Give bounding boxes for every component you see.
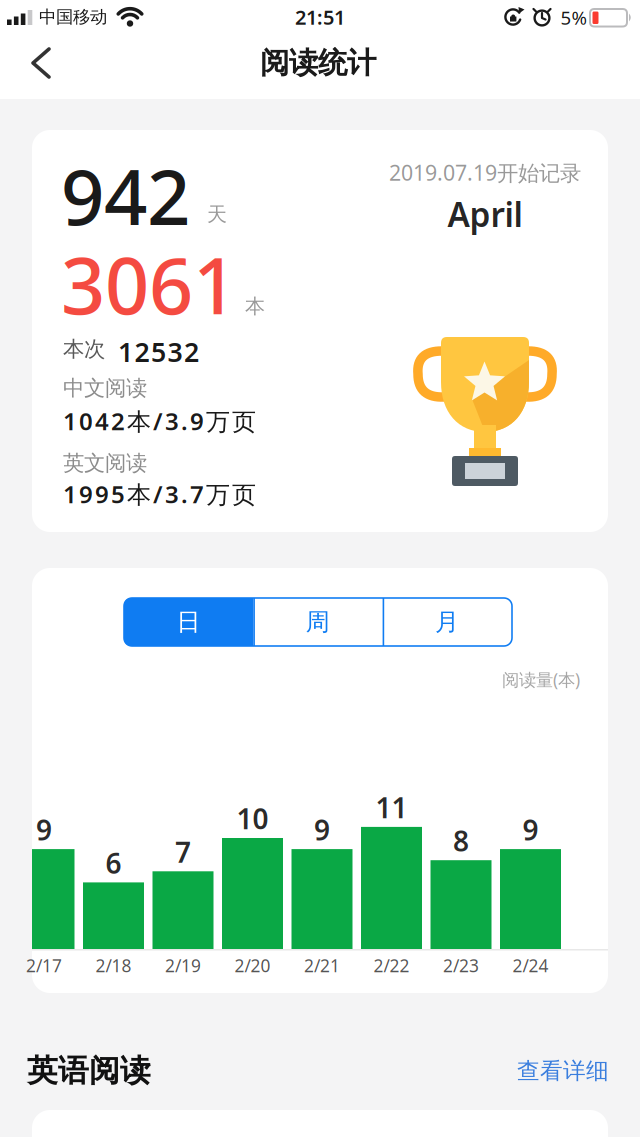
- staticText: 查看详细: [517, 1057, 609, 1085]
- staticText: 周: [306, 607, 330, 637]
- button[interactable]: 周: [253, 598, 382, 646]
- staticText: April: [447, 192, 522, 236]
- staticText: 21:51: [295, 4, 345, 30]
- staticText: 1042本/3.9万页: [63, 405, 256, 437]
- staticText: 月: [435, 607, 459, 637]
- staticText: 12532: [118, 334, 199, 369]
- staticText: 英文阅读: [63, 450, 147, 476]
- staticText: 942: [61, 145, 190, 246]
- staticText: 9: [314, 811, 330, 848]
- staticText: 6: [105, 844, 121, 881]
- button[interactable]: 月: [383, 598, 512, 646]
- staticText: 5%: [560, 5, 587, 30]
- staticText: 2/17: [26, 954, 62, 977]
- staticText: 3061: [61, 233, 237, 336]
- staticText: 8: [453, 822, 469, 859]
- staticText: 7: [175, 833, 191, 870]
- staticText: 10: [236, 800, 268, 837]
- staticText: 2/23: [443, 954, 479, 977]
- staticText: 2/19: [165, 954, 201, 977]
- staticText: 1995本/3.7万页: [63, 478, 256, 510]
- staticText: 11: [375, 789, 407, 826]
- staticText: 日: [176, 607, 200, 637]
- staticText: 中文阅读: [63, 375, 147, 401]
- button[interactable]: 查看详细: [517, 1057, 609, 1085]
- staticText: 2/22: [373, 954, 409, 977]
- staticText: 9: [36, 811, 52, 848]
- button[interactable]: [16, 41, 72, 85]
- staticText: 2/21: [304, 954, 340, 977]
- staticText: 天: [207, 202, 227, 227]
- staticText: 本: [245, 294, 265, 319]
- button[interactable]: 日: [124, 598, 253, 646]
- staticText: 2/24: [512, 954, 548, 977]
- staticText: 9: [522, 811, 538, 848]
- staticText: 2/20: [234, 954, 270, 977]
- staticText: 阅读统计: [260, 45, 376, 81]
- staticText: 本次: [63, 336, 105, 362]
- staticText: 阅读量(本): [502, 668, 580, 691]
- staticText: 2019.07.19开始记录: [389, 158, 581, 187]
- staticText: 中国移动: [39, 6, 107, 28]
- staticText: 英语阅读: [27, 1052, 151, 1090]
- staticText: 2/18: [95, 954, 131, 977]
